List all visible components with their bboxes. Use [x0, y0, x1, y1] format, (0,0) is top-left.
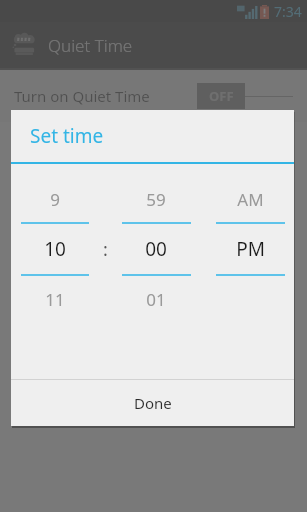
- staticText: :: [103, 237, 108, 262]
- staticText: Done: [134, 393, 172, 413]
- staticText: 7:34: [274, 2, 302, 21]
- staticText: 10: [44, 236, 66, 262]
- staticText: 01: [146, 288, 166, 311]
- staticText: 00: [145, 236, 167, 262]
- button[interactable]: 01: [112, 284, 200, 314]
- button[interactable]: 9: [11, 184, 98, 214]
- staticText: Quiet Time: [48, 34, 133, 57]
- staticText: 59: [146, 188, 166, 211]
- staticText: PM: [236, 236, 265, 262]
- staticText: 9: [50, 188, 60, 211]
- button[interactable]: PM: [206, 234, 294, 264]
- button[interactable]: 00: [112, 234, 200, 264]
- button[interactable]: AM: [206, 184, 294, 214]
- button[interactable]: Done: [11, 380, 294, 426]
- staticText: OFF: [209, 87, 234, 105]
- button[interactable]: 59: [112, 184, 200, 214]
- staticText: AM: [237, 188, 264, 211]
- staticText: Turn on Quiet Time: [14, 86, 150, 106]
- button[interactable]: 10: [11, 234, 98, 264]
- button[interactable]: 11: [11, 284, 98, 314]
- staticText: Set time: [30, 123, 104, 149]
- button[interactable]: Turn on Quiet Time: [197, 83, 293, 109]
- staticText: 11: [45, 288, 65, 311]
